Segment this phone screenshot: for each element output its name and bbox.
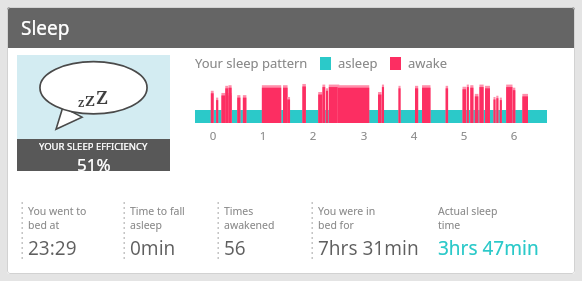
staticText: bed at xyxy=(28,218,60,232)
staticText: awake xyxy=(408,54,448,72)
staticText: YOUR SLEEP EFFICIENCY xyxy=(39,140,148,153)
staticText: z xyxy=(78,94,85,110)
staticText: time xyxy=(438,218,461,232)
staticText: 56 xyxy=(224,235,246,261)
staticText: 0min xyxy=(130,235,176,261)
staticText: 6 xyxy=(507,128,521,144)
staticText: 51% xyxy=(77,153,111,171)
button[interactable]: You went to xyxy=(26,198,119,274)
staticText: 23:29 xyxy=(28,235,77,261)
staticText: 3hrs 47min xyxy=(438,235,539,261)
staticText: 2 xyxy=(306,128,320,144)
staticText: You went to xyxy=(28,204,87,218)
staticText: 7hrs 31min xyxy=(318,235,419,261)
staticText: Z xyxy=(85,90,96,110)
staticText: 1 xyxy=(256,128,270,144)
button[interactable] xyxy=(195,76,547,126)
button[interactable]: Actual sleep xyxy=(438,198,569,274)
button[interactable]: z xyxy=(17,55,170,171)
staticText: bed for xyxy=(318,218,354,232)
staticText: 0 xyxy=(206,128,220,144)
staticText: Your sleep pattern xyxy=(195,54,308,72)
staticText: Times xyxy=(224,204,254,218)
staticText: asleep xyxy=(338,54,378,72)
staticText: Time to fall xyxy=(130,204,185,218)
staticText: Z xyxy=(96,85,109,110)
staticText: 3 xyxy=(357,128,371,144)
button[interactable]: Time to fall xyxy=(128,198,213,274)
staticText: asleep xyxy=(130,218,162,232)
button[interactable]: Times xyxy=(222,198,307,274)
staticText: You were in xyxy=(318,204,376,218)
staticText: awakened xyxy=(224,218,275,232)
staticText: 4 xyxy=(407,128,421,144)
staticText: 5 xyxy=(457,128,471,144)
staticText: Actual sleep xyxy=(438,204,498,218)
staticText: Sleep xyxy=(21,15,70,41)
button[interactable]: You were in xyxy=(316,198,438,274)
button[interactable]: Sleep xyxy=(7,7,575,48)
